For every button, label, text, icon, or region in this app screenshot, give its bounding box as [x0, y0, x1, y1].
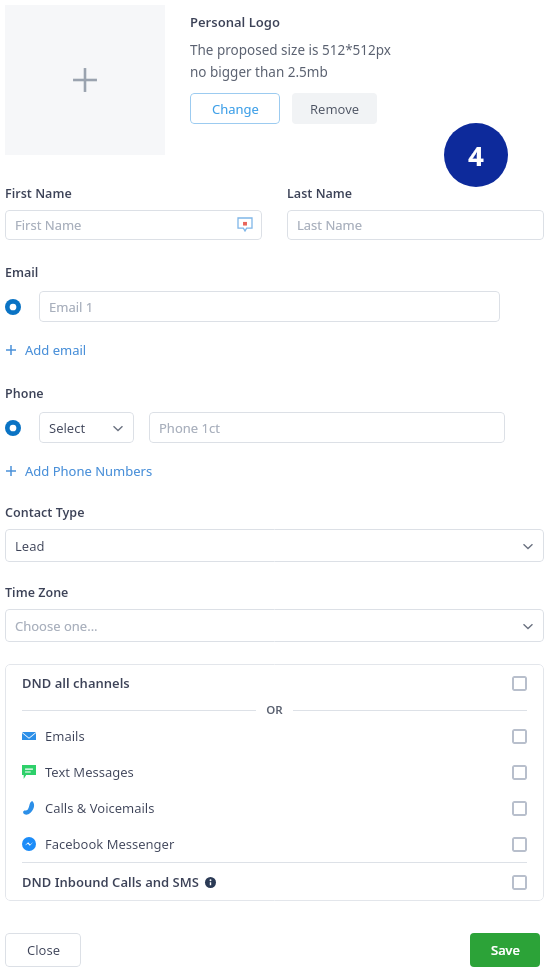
staticText: DND all channels	[22, 674, 130, 692]
button[interactable]: Upload logo	[5, 5, 165, 155]
staticText: Select	[49, 419, 86, 437]
button[interactable]: Primary phone	[5, 420, 21, 436]
button[interactable]: Change	[190, 93, 280, 124]
staticText: Phone 1ct	[159, 419, 220, 437]
staticText: Phone	[5, 385, 44, 402]
button[interactable]: Close	[5, 933, 81, 967]
staticText: Email 1	[49, 298, 94, 316]
staticText: Text Messages	[45, 763, 134, 781]
staticText: Change	[212, 100, 259, 118]
staticText: The proposed size is 512*512px	[190, 41, 391, 59]
staticText: First Name	[5, 185, 72, 202]
staticText: Contact Type	[5, 504, 85, 521]
button[interactable]: Last Name	[287, 210, 544, 240]
button[interactable]: Select	[39, 412, 134, 443]
staticText: Close	[27, 941, 60, 959]
button[interactable]: Text Messages	[5, 754, 544, 790]
staticText: 4	[468, 137, 484, 174]
button[interactable]: DND Inbound Calls and SMS	[5, 863, 544, 901]
button[interactable]: Calls & Voicemails	[5, 790, 544, 826]
button[interactable]: Lead	[5, 529, 544, 562]
button[interactable]: Step 4	[444, 123, 508, 187]
staticText: no bigger than 2.5mb	[190, 63, 328, 81]
staticText: Email	[5, 264, 39, 281]
button[interactable]: Email 1	[39, 291, 500, 322]
staticText: Add email	[25, 341, 87, 359]
staticText: Personal Logo	[190, 13, 280, 31]
staticText: Choose one...	[15, 617, 98, 635]
button[interactable]: Phone 1ct	[149, 412, 505, 443]
button[interactable]: Save	[470, 933, 540, 967]
button[interactable]: Choose one...	[5, 609, 544, 642]
button[interactable]: Add email	[5, 339, 87, 361]
staticText: Remove	[310, 100, 360, 118]
staticText: Add Phone Numbers	[25, 462, 153, 480]
staticText: Save	[491, 941, 520, 959]
button[interactable]: DND all channels	[5, 664, 544, 702]
staticText: Time Zone	[5, 584, 69, 601]
staticText: DND Inbound Calls and SMS	[22, 873, 199, 891]
button[interactable]: Add Phone Numbers	[5, 460, 153, 482]
staticText: Emails	[45, 727, 85, 745]
staticText: Calls & Voicemails	[45, 799, 155, 817]
button[interactable]: Emails	[5, 718, 544, 754]
staticText: Last Name	[287, 185, 353, 202]
staticText: Lead	[15, 537, 45, 555]
staticText: OR	[266, 702, 283, 718]
button[interactable]: Facebook Messenger	[5, 826, 544, 862]
button[interactable]: Remove	[292, 93, 377, 124]
button[interactable]: First Name	[5, 210, 262, 240]
staticText: Last Name	[297, 216, 363, 234]
staticText: Facebook Messenger	[45, 835, 175, 853]
staticText: First Name	[15, 216, 82, 234]
button[interactable]: Primary email	[5, 299, 21, 315]
